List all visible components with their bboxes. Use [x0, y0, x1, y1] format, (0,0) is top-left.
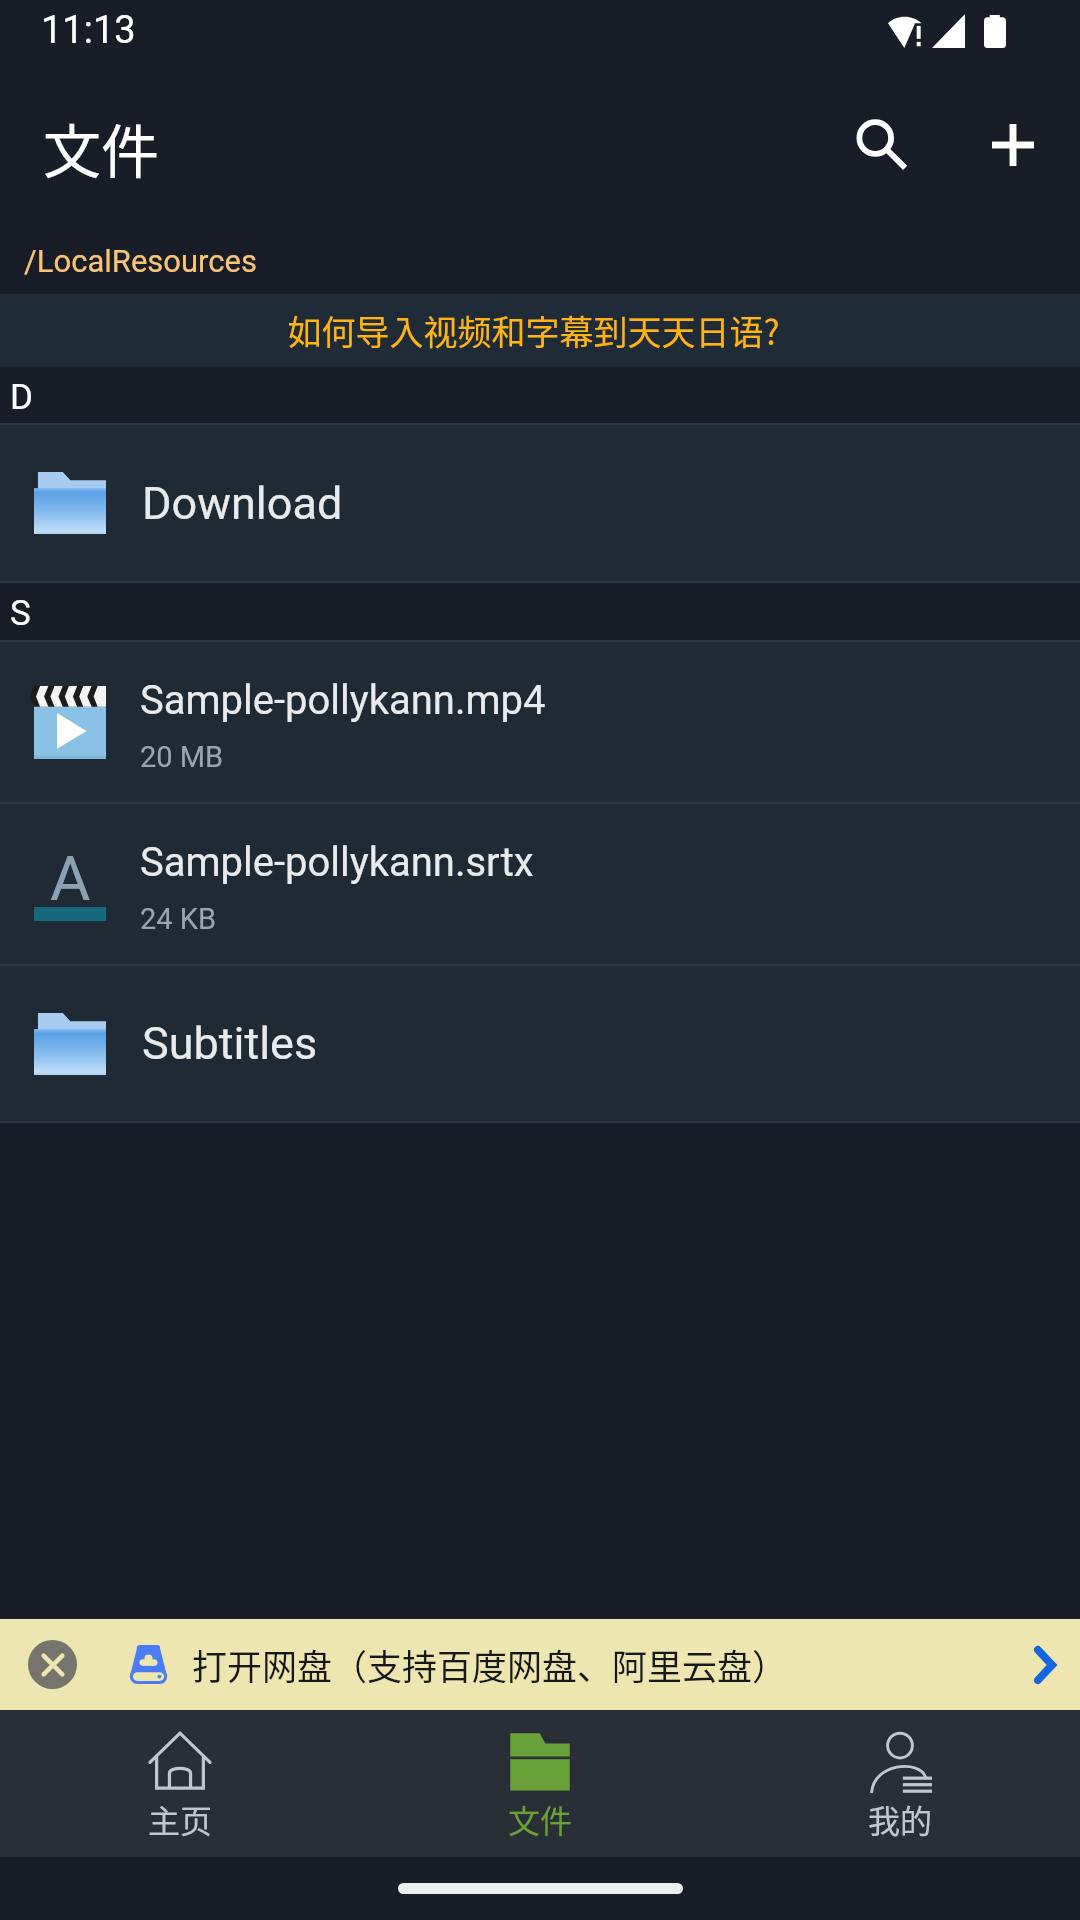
staticText: S	[10, 593, 31, 634]
staticText: A	[50, 842, 91, 915]
button[interactable]: Close	[28, 1640, 77, 1689]
staticText: Sample-pollykann.srtx	[140, 839, 534, 886]
button[interactable]: Close	[0, 1619, 1080, 1710]
staticText: /LocalResources	[24, 243, 257, 279]
staticText: 主页	[148, 1796, 213, 1842]
staticText: 我的	[868, 1796, 933, 1842]
button[interactable]: /LocalResources	[0, 228, 1080, 294]
button[interactable]: A	[0, 804, 1080, 964]
button[interactable]: Sample-pollykann.mp4	[0, 642, 1080, 802]
staticText: 如何导入视频和字幕到天天日语?	[287, 306, 780, 355]
staticText: 24 KB	[140, 902, 217, 936]
staticText: 打开网盘（支持百度网盘、阿里云盘）	[192, 1639, 788, 1690]
staticText: Sample-pollykann.mp4	[140, 677, 546, 724]
button[interactable]: Search	[830, 93, 934, 197]
staticText: 11:13	[41, 8, 136, 53]
staticText: D	[10, 377, 33, 418]
staticText: 文件	[508, 1796, 573, 1842]
button[interactable]: 如何导入视频和字幕到天天日语?	[0, 294, 1080, 367]
staticText: Download	[142, 477, 343, 530]
button[interactable]: Subtitles	[0, 966, 1080, 1121]
button[interactable]: Add	[961, 93, 1065, 197]
staticText: Subtitles	[142, 1017, 318, 1070]
button[interactable]: 我的	[720, 1710, 1080, 1857]
staticText: 20 MB	[140, 740, 224, 774]
staticText: 文件	[43, 106, 160, 190]
button[interactable]: 主页	[0, 1710, 360, 1857]
button[interactable]: Download	[0, 425, 1080, 581]
button[interactable]: 文件	[360, 1710, 720, 1857]
